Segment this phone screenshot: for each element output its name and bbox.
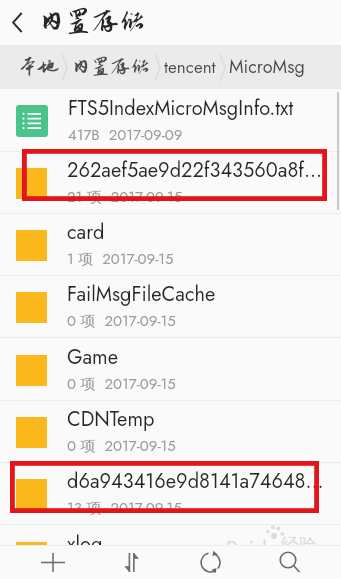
button[interactable]: CDNTemp <box>0 401 341 463</box>
button[interactable]: Refresh <box>182 545 238 579</box>
staticText: 本地 <box>18 56 58 78</box>
button[interactable]: Game <box>0 339 341 401</box>
button[interactable]: d6a943416e9d8141a74648… <box>0 463 341 525</box>
button[interactable]: Add <box>25 545 81 579</box>
staticText: 262aef5ae9d22f343560a8f… <box>67 156 323 185</box>
button[interactable]: card <box>0 214 341 276</box>
button[interactable]: 本地 <box>16 56 60 78</box>
staticText: 1 项 2017-09-15 <box>67 248 174 270</box>
staticText: MicroMsg <box>229 54 305 80</box>
button[interactable]: 262aef5ae9d22f343560a8f… <box>0 152 341 214</box>
staticText: 0 项 2017-09-15 <box>67 373 176 395</box>
staticText: Baidu <box>226 532 279 564</box>
staticText: 21 项 2017-09-15 <box>67 186 183 208</box>
button[interactable]: Search <box>262 545 318 579</box>
staticText: d6a943416e9d8141a74648… <box>67 467 324 496</box>
button[interactable]: MicroMsg <box>227 54 307 80</box>
button[interactable]: Back <box>0 0 34 45</box>
staticText: xlog <box>67 530 103 559</box>
staticText: 0 项 2017-09-15 <box>67 560 176 579</box>
staticText: 内置存储 <box>71 56 151 78</box>
staticText: Game <box>67 343 119 372</box>
staticText: FTS5IndexMicroMsgInfo.txt <box>68 94 294 123</box>
staticText: 13 项 2017-09-15 <box>67 497 182 519</box>
staticText: jingyan.baidu.com <box>225 555 312 571</box>
button[interactable]: xlog <box>0 526 341 579</box>
staticText: 417B 2017-09-09 <box>68 124 183 146</box>
staticText: tencent <box>164 55 216 80</box>
staticText: 经验 <box>281 534 317 557</box>
button[interactable]: Sort <box>103 545 159 579</box>
button[interactable]: 内置存储 <box>69 56 153 78</box>
button[interactable]: FailMsgFileCache <box>0 276 341 338</box>
staticText: 内置存储 <box>38 7 146 37</box>
button[interactable]: tencent <box>162 55 218 80</box>
staticText: 0 项 2017-09-15 <box>67 435 176 457</box>
staticText: FailMsgFileCache <box>67 280 216 309</box>
button[interactable]: FTS5IndexMicroMsgInfo.txt <box>0 90 341 152</box>
staticText: 0 项 2017-09-15 <box>67 310 176 332</box>
staticText: CDNTemp <box>67 405 155 434</box>
staticText: card <box>67 218 105 247</box>
